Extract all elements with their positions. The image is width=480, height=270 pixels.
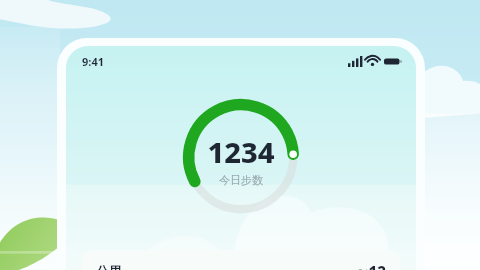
staticText: 9:41 <box>82 54 104 69</box>
staticText: 1234 <box>207 132 275 171</box>
button[interactable]: 今日步数 1234 <box>182 98 300 216</box>
button[interactable]: 公里 <box>82 250 400 270</box>
staticText: 公里 <box>96 263 122 270</box>
staticText: ≈12 <box>356 261 386 270</box>
staticText: 今日步数 <box>219 173 263 187</box>
